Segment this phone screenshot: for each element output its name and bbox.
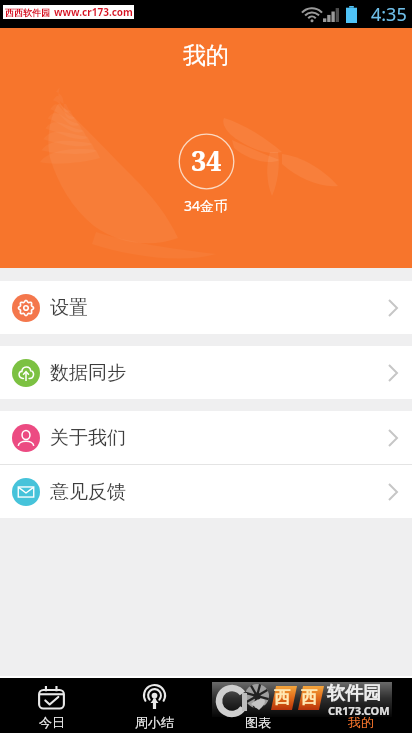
staticText: 34 xyxy=(191,142,222,179)
button[interactable]: 图表 xyxy=(206,678,309,733)
button[interactable]: 周小结 xyxy=(103,678,206,733)
button[interactable]: 数据同步 xyxy=(0,346,412,399)
staticText: 34金币 xyxy=(184,196,229,215)
staticText: 我的 xyxy=(183,41,229,70)
staticText: 西 xyxy=(274,688,290,708)
button[interactable]: 我的 xyxy=(309,678,412,733)
staticText: 图表 xyxy=(245,714,271,730)
staticText: 设置 xyxy=(50,296,88,320)
staticText: 关于我们 xyxy=(50,426,126,450)
button[interactable]: 关于我们 xyxy=(0,411,412,464)
staticText: 4:35 xyxy=(371,2,407,27)
staticText: 软件园 xyxy=(327,682,381,705)
staticText: www.cr173.com xyxy=(54,5,133,19)
button[interactable]: 设置 xyxy=(0,281,412,334)
button[interactable]: 意见反馈 xyxy=(0,465,412,518)
staticText: 我的 xyxy=(348,714,374,730)
staticText: CR173.COM xyxy=(328,703,390,717)
staticText: 西西软件园 xyxy=(5,7,50,18)
staticText: 数据同步 xyxy=(50,361,126,385)
staticText: 西 xyxy=(301,688,317,708)
button[interactable]: 今日 xyxy=(0,678,103,733)
staticText: 周小结 xyxy=(135,714,174,730)
staticText: 意见反馈 xyxy=(50,480,126,504)
staticText: 今日 xyxy=(39,714,65,730)
